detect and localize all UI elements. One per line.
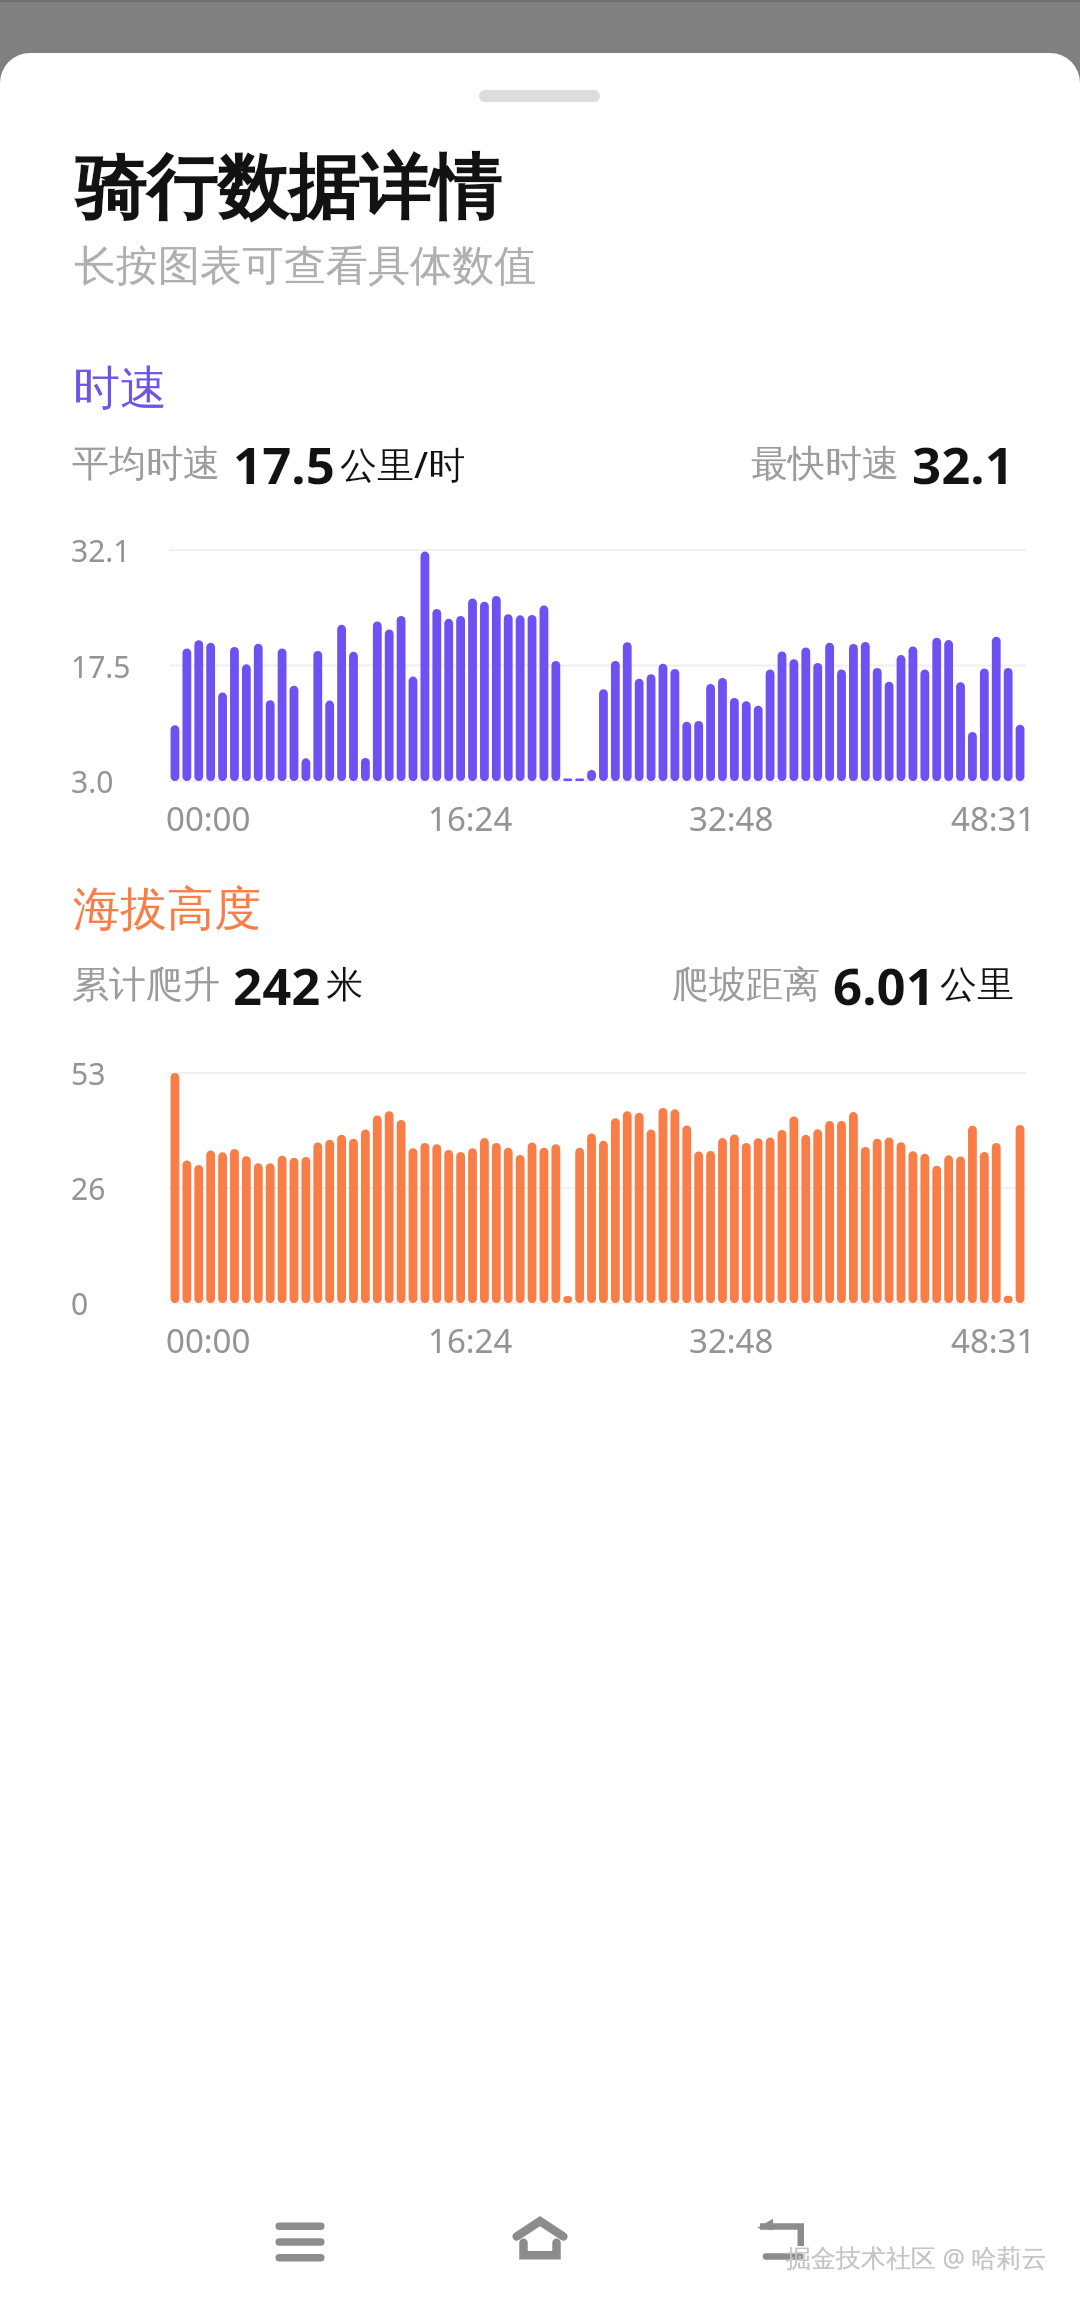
- staticText: 3.0: [71, 761, 114, 802]
- staticText: 16:24: [428, 796, 513, 841]
- staticText: 00:00: [166, 1318, 251, 1363]
- staticText: 17.5: [233, 429, 335, 498]
- staticText: 16:24: [428, 1318, 513, 1363]
- staticText: 00:00: [166, 796, 251, 841]
- button[interactable]: 时速图表: [169, 550, 1026, 781]
- staticText: 6.01: [833, 950, 935, 1019]
- staticText: 爬坡距离: [672, 961, 820, 1008]
- staticText: 0: [71, 1283, 89, 1324]
- staticText: 公里: [940, 961, 1014, 1008]
- staticText: 48:31: [951, 796, 1036, 841]
- button[interactable]: 海拔高度图表: [169, 1073, 1026, 1303]
- staticText: 32.1: [71, 530, 131, 571]
- staticText: 公里/时: [340, 438, 466, 489]
- button[interactable]: Back: [725, 2186, 835, 2296]
- staticText: 32:48: [689, 796, 774, 841]
- staticText: 最快时速: [751, 440, 899, 487]
- staticText: 32:48: [689, 1318, 774, 1363]
- staticText: 17.5: [71, 646, 131, 687]
- staticText: 米: [326, 961, 363, 1008]
- staticText: 48:31: [951, 1318, 1036, 1363]
- staticText: 骑行数据详情: [75, 144, 501, 233]
- staticText: 32.1: [912, 429, 1014, 498]
- button[interactable]: Recents: [245, 2187, 355, 2297]
- staticText: 掘金技术社区 @ 哈莉云: [786, 2240, 1047, 2274]
- staticText: 26: [71, 1168, 106, 1209]
- staticText: 平均时速: [72, 440, 220, 487]
- staticText: 累计爬升: [72, 961, 220, 1008]
- button[interactable]: Home: [485, 2184, 595, 2294]
- staticText: 长按图表可查看具体数值: [74, 240, 536, 293]
- staticText: 时速: [73, 359, 167, 418]
- staticText: 242: [233, 950, 321, 1019]
- staticText: 53: [71, 1053, 106, 1094]
- staticText: 海拔高度: [73, 880, 261, 939]
